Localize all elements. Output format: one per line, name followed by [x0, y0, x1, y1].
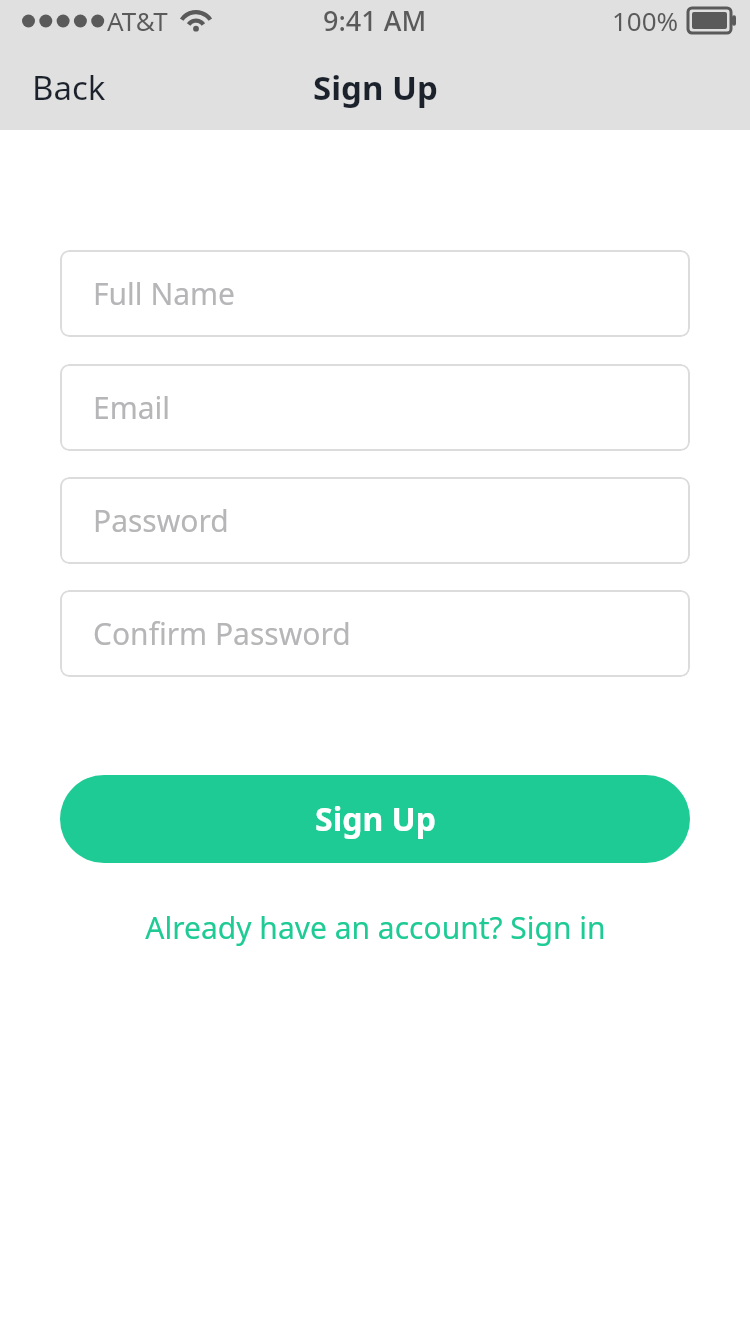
staticText: Already have an account? Sign in	[145, 907, 606, 948]
staticText: Full Name	[93, 273, 235, 314]
staticText: Sign Up	[315, 797, 436, 841]
staticText: Sign Up	[313, 65, 438, 110]
button[interactable]: Full Name	[60, 250, 690, 337]
button[interactable]: Password	[60, 477, 690, 564]
staticText: Confirm Password	[93, 613, 351, 654]
staticText: AT&T	[107, 3, 168, 38]
button[interactable]: Email	[60, 364, 690, 451]
staticText: 9:41 AM	[323, 2, 427, 39]
staticText: Back	[32, 65, 106, 110]
button[interactable]: Sign Up	[60, 775, 690, 863]
staticText: Password	[93, 500, 229, 541]
button[interactable]: Confirm Password	[60, 590, 690, 677]
button[interactable]: Back	[0, 44, 130, 130]
button[interactable]: Already have an account? Sign in	[0, 899, 750, 955]
staticText: 100%	[612, 3, 679, 38]
staticText: Email	[93, 387, 171, 428]
